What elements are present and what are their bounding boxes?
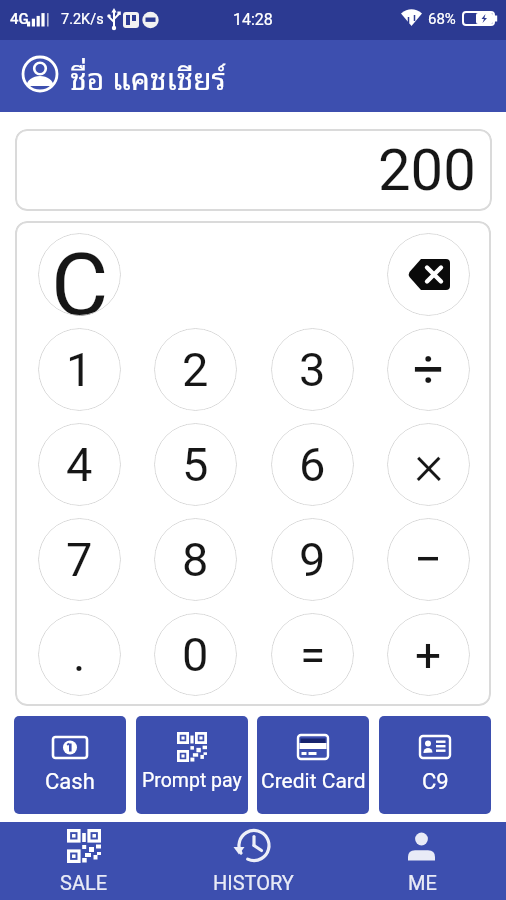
button[interactable]: C9 xyxy=(379,716,491,814)
staticText: 14:28 xyxy=(233,10,273,29)
button[interactable]: ME xyxy=(366,822,478,900)
button[interactable]: 9 xyxy=(271,518,354,601)
button[interactable]: 2 xyxy=(154,328,237,411)
staticText: 68% xyxy=(428,10,456,28)
staticText: − xyxy=(414,531,443,588)
button[interactable]: ÷ xyxy=(387,328,470,411)
staticText: ME xyxy=(408,871,437,894)
staticText: 7 xyxy=(66,532,93,587)
button[interactable]: . xyxy=(38,613,121,696)
button[interactable]: SALE xyxy=(28,822,140,900)
staticText: × xyxy=(414,431,444,498)
button[interactable]: 5 xyxy=(154,423,237,506)
button[interactable] xyxy=(387,233,470,316)
staticText: SALE xyxy=(60,871,108,894)
staticText: HISTORY xyxy=(213,871,294,894)
button[interactable]: 6 xyxy=(271,423,354,506)
staticText: C9 xyxy=(422,769,449,795)
button[interactable]: + xyxy=(387,613,470,696)
staticText: 4G xyxy=(10,10,29,28)
button[interactable]: × xyxy=(387,423,470,506)
button[interactable]: 8 xyxy=(154,518,237,601)
staticText: 0 xyxy=(182,627,209,682)
staticText: 7.2K/s xyxy=(61,11,104,28)
staticText: ชื่อ แคชเชียร์ xyxy=(70,52,226,100)
staticText: 4 xyxy=(66,437,93,492)
staticText: 8 xyxy=(182,532,209,587)
button[interactable]: 4 xyxy=(38,423,121,506)
button[interactable]: HISTORY xyxy=(197,822,309,900)
staticText: 1 xyxy=(66,342,93,397)
staticText: . xyxy=(73,627,86,682)
staticText: = xyxy=(300,628,326,682)
staticText: 3 xyxy=(299,342,326,397)
staticText: 200 xyxy=(378,136,476,204)
staticText: 6 xyxy=(299,437,326,492)
staticText: + xyxy=(415,628,442,682)
staticText: Cash xyxy=(45,769,95,795)
staticText: 5 xyxy=(182,437,209,492)
staticText: Prompt pay xyxy=(142,769,242,792)
button[interactable]: Cash xyxy=(14,716,126,814)
staticText: 2 xyxy=(182,342,209,397)
button[interactable]: 3 xyxy=(271,328,354,411)
staticText: C xyxy=(51,233,109,316)
button[interactable]: Prompt pay xyxy=(136,716,248,814)
button[interactable]: 1 xyxy=(38,328,121,411)
button[interactable]: Credit Card xyxy=(257,716,369,814)
staticText: 9 xyxy=(299,532,326,587)
button[interactable]: 7 xyxy=(38,518,121,601)
button[interactable]: − xyxy=(387,518,470,601)
button[interactable]: 0 xyxy=(154,613,237,696)
button[interactable]: ชื่อ แคชเชียร์ xyxy=(0,40,506,112)
staticText: ÷ xyxy=(413,338,444,401)
button[interactable]: C xyxy=(38,233,121,316)
staticText: Credit Card xyxy=(261,769,366,794)
button[interactable]: = xyxy=(271,613,354,696)
